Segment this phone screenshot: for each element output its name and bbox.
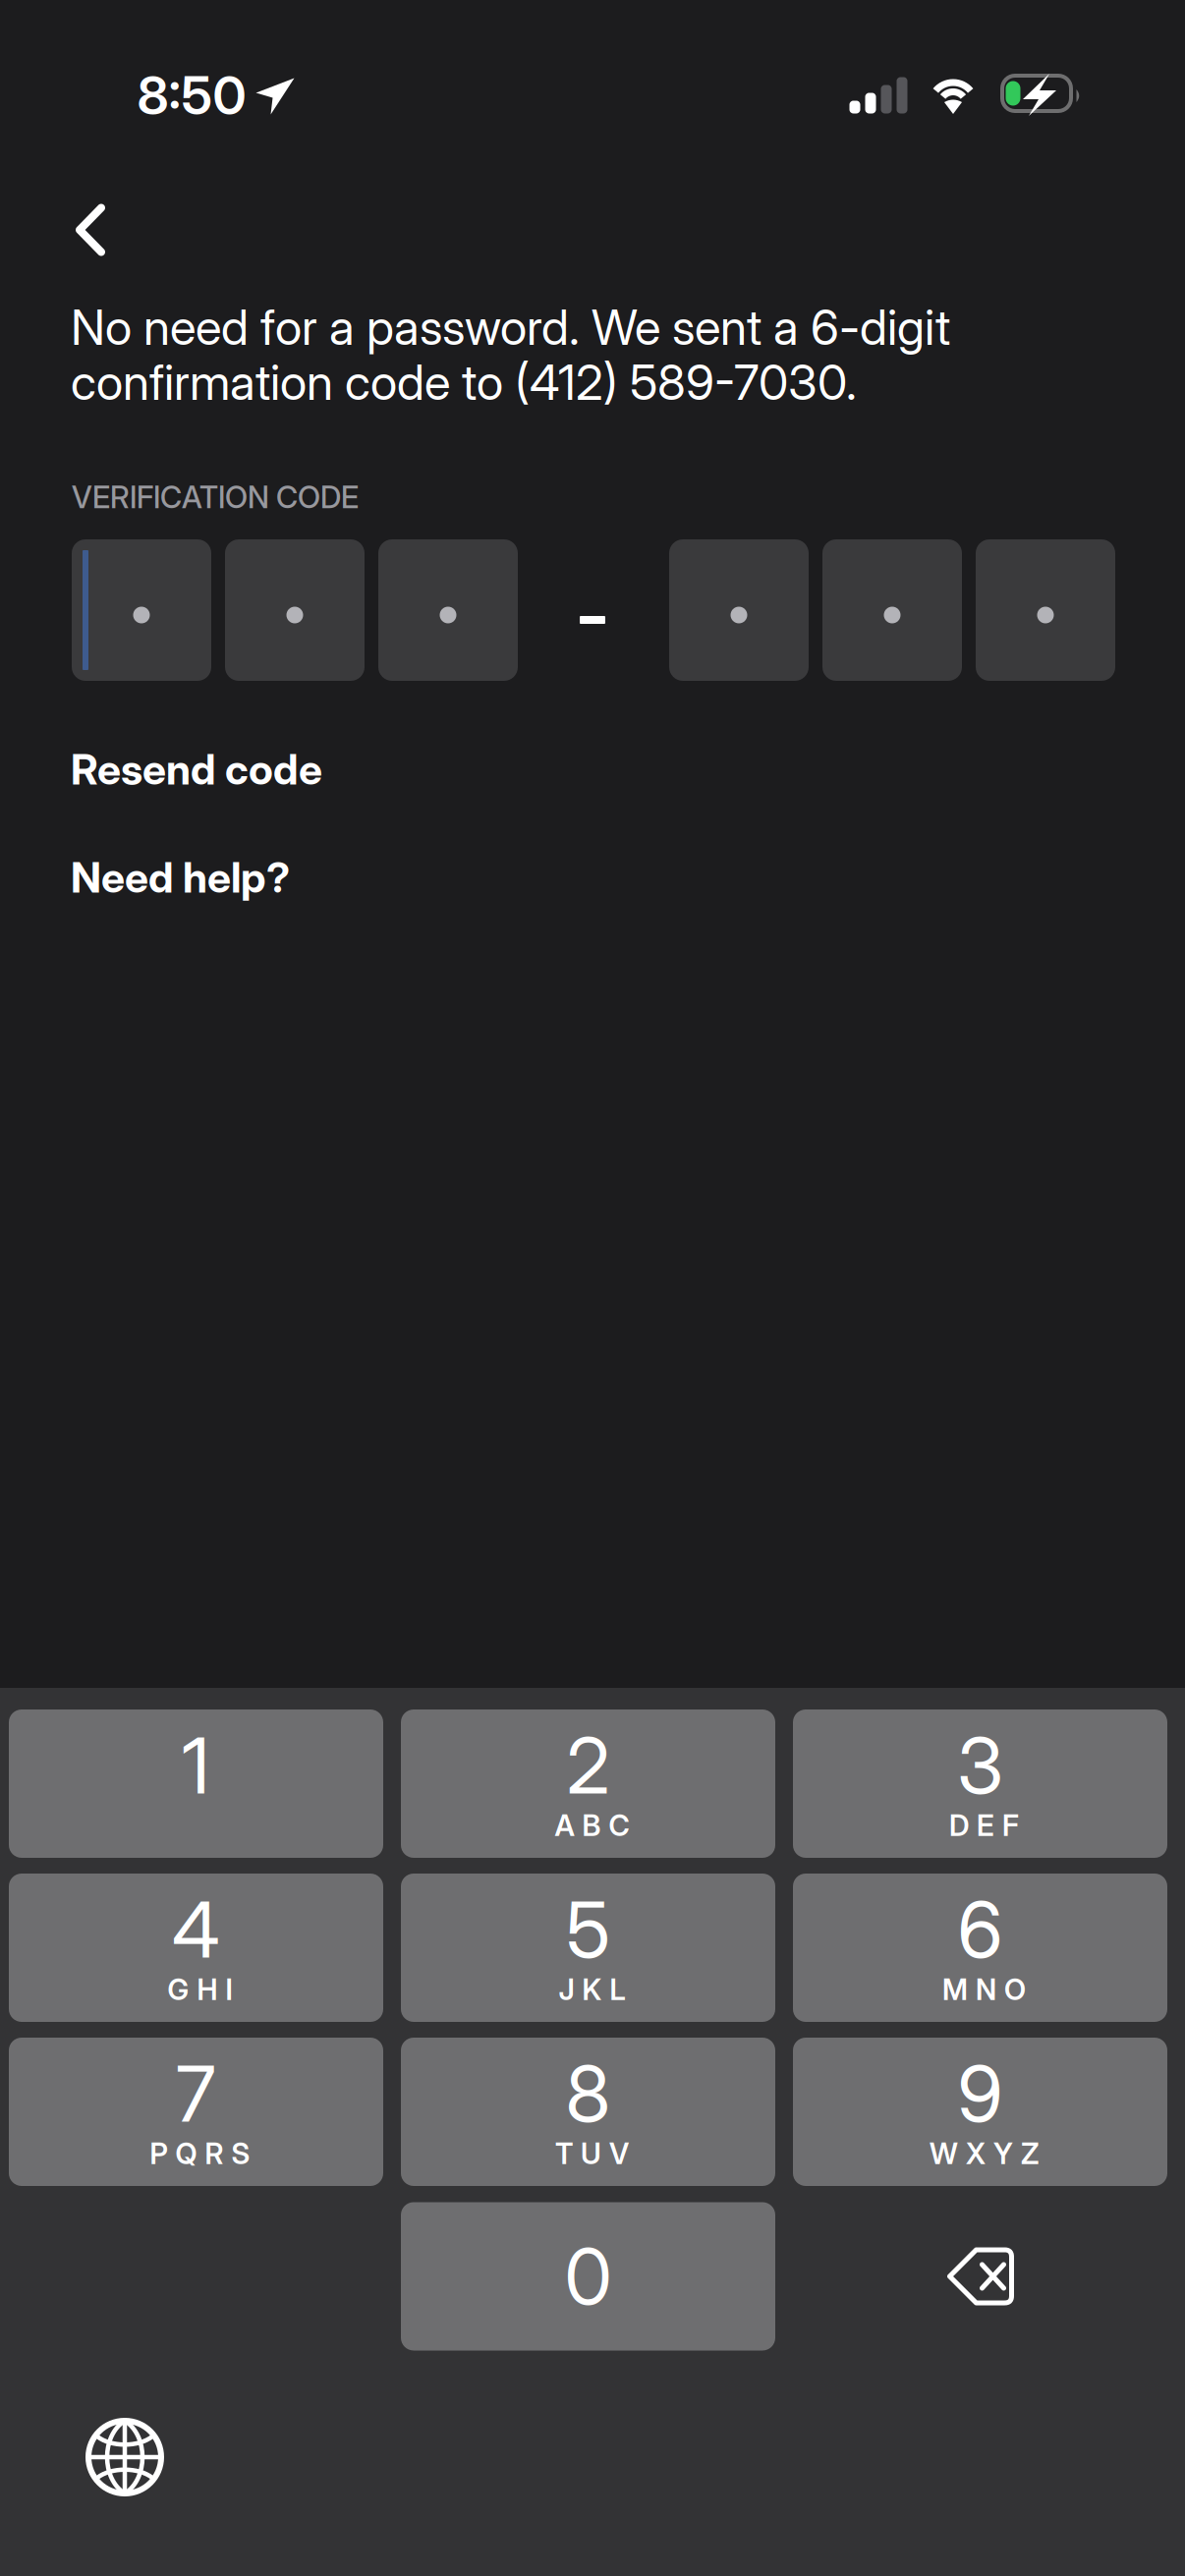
staticText: 0: [564, 2230, 612, 2323]
staticText: 8:50: [137, 64, 246, 127]
staticText: Resend code: [71, 744, 322, 795]
staticText: PQRS: [150, 2136, 250, 2171]
staticText: 9: [958, 2047, 1003, 2140]
staticText: VERIFICATION CODE: [72, 479, 359, 515]
button[interactable]: 2: [401, 1709, 775, 1858]
staticText: 4: [172, 1883, 220, 1976]
button[interactable]: 7: [9, 2038, 383, 2186]
button[interactable]: 6: [793, 1874, 1167, 2022]
button[interactable]: 9: [793, 2038, 1167, 2186]
button[interactable]: 0: [401, 2202, 775, 2351]
staticText: No need for a password. We sent a 6-digi…: [71, 300, 950, 410]
button[interactable]: 1: [9, 1709, 383, 1858]
staticText: 7: [176, 2047, 216, 2140]
button[interactable]: Resend code: [71, 732, 338, 807]
staticText: Need help?: [71, 852, 290, 903]
button[interactable]: Delete: [793, 2202, 1167, 2351]
staticText: TUV: [555, 2136, 629, 2171]
button[interactable]: Change keyboard: [51, 2383, 198, 2531]
staticText: DEF: [949, 1808, 1019, 1843]
button[interactable]: 8: [401, 2038, 775, 2186]
staticText: MNO: [942, 1972, 1026, 2007]
button[interactable]: Need help?: [71, 840, 307, 915]
button[interactable]: 5: [401, 1874, 775, 2022]
button[interactable]: Back: [22, 171, 159, 289]
staticText: GHI: [168, 1972, 232, 2007]
staticText: WXYZ: [930, 2136, 1039, 2171]
staticText: 6: [958, 1883, 1003, 1976]
button[interactable]: 4: [9, 1874, 383, 2022]
button[interactable]: Verification code: [72, 539, 1115, 681]
staticText: 3: [957, 1719, 1003, 1812]
staticText: ABC: [555, 1808, 629, 1843]
staticText: 2: [566, 1719, 610, 1812]
staticText: 5: [566, 1883, 610, 1976]
staticText: JKL: [559, 1972, 625, 2007]
button[interactable]: 3: [793, 1709, 1167, 1858]
staticText: 8: [565, 2047, 611, 2140]
staticText: 1: [182, 1719, 210, 1812]
